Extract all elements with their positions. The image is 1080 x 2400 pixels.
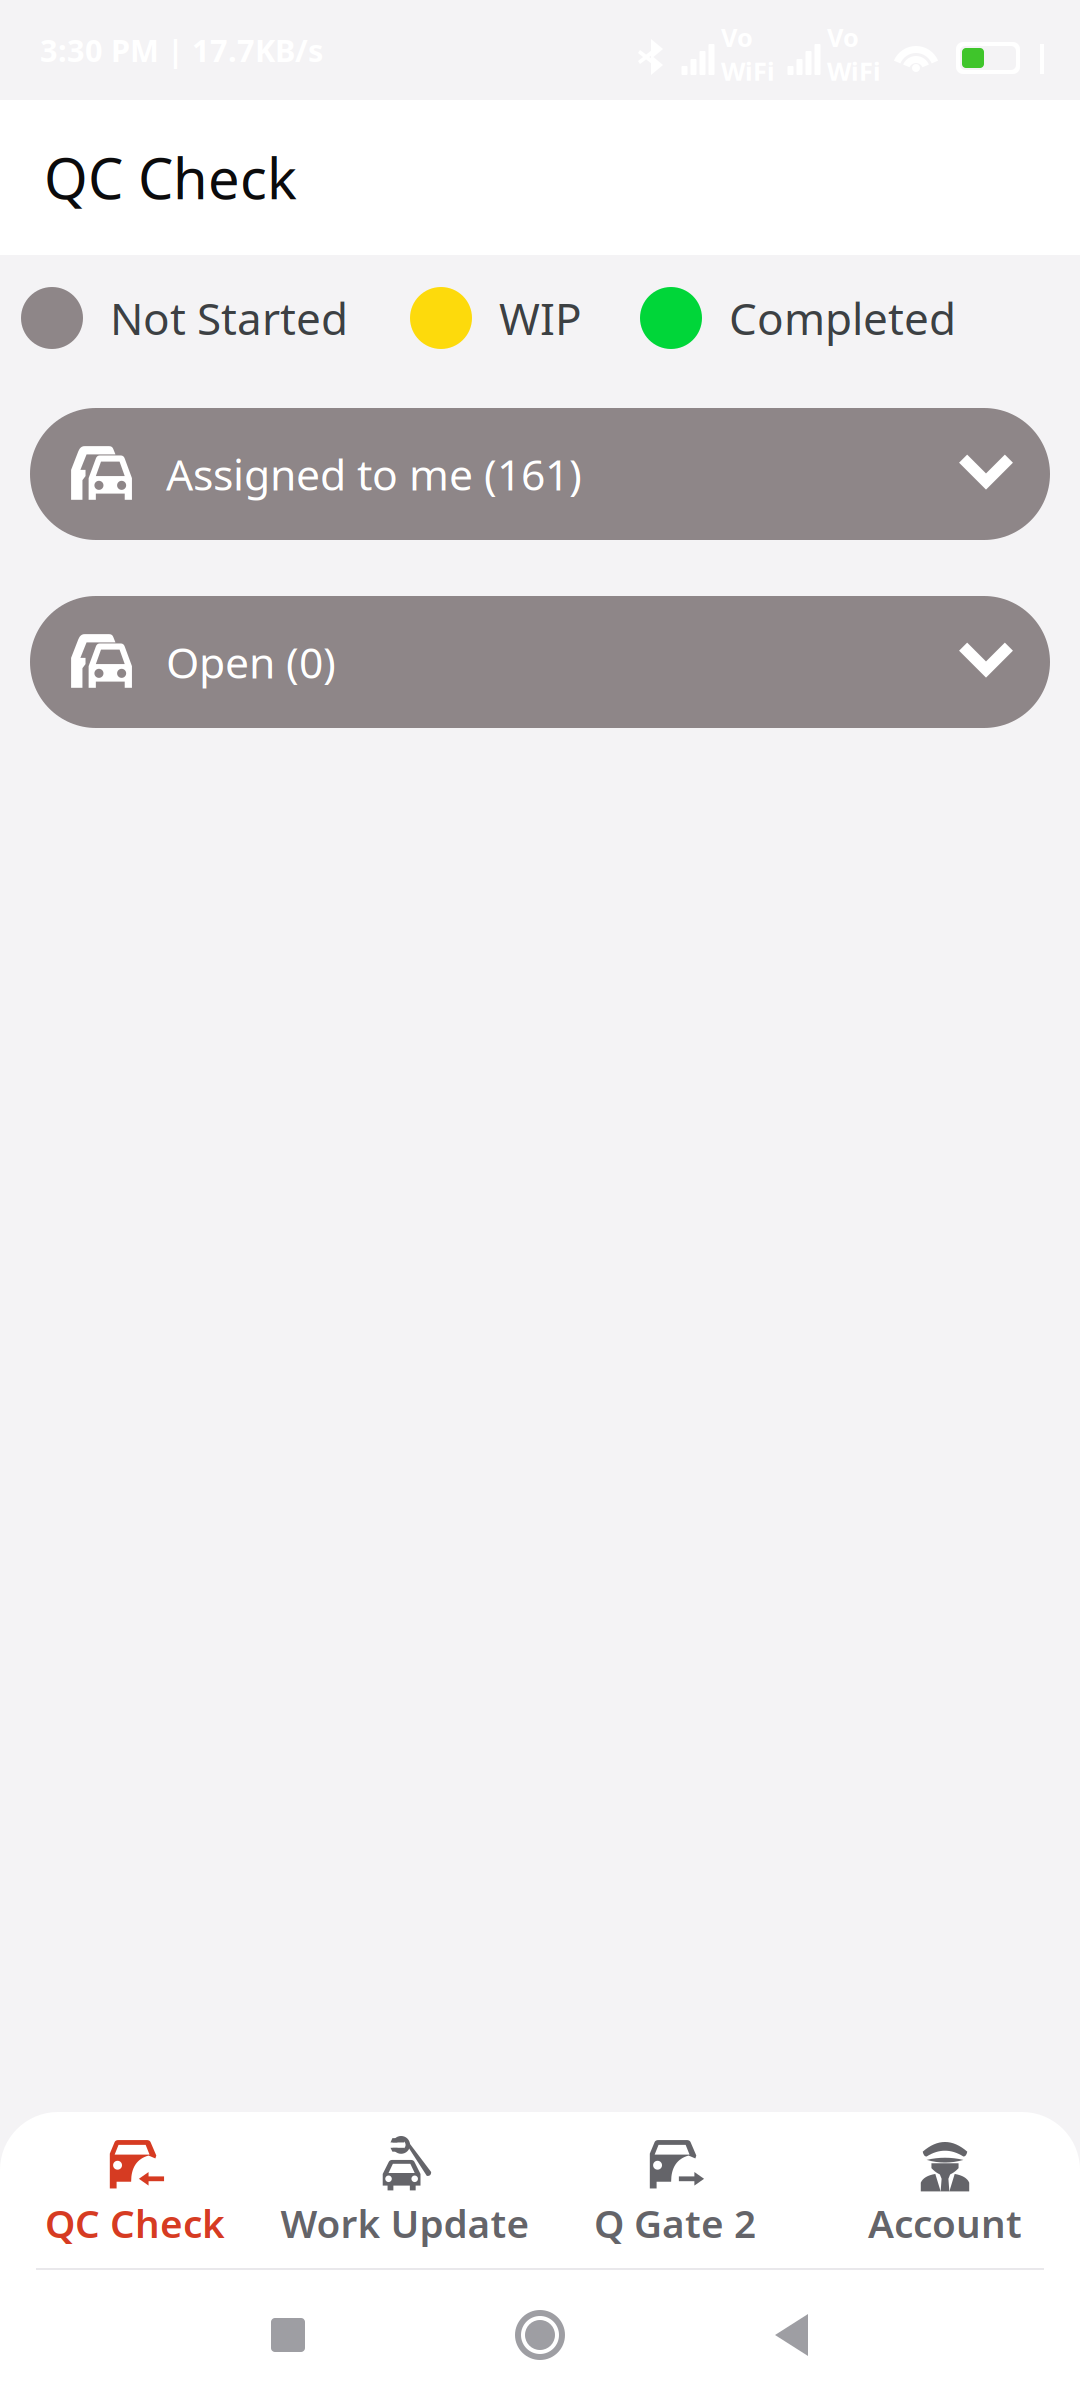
button[interactable]: Work Update xyxy=(270,2112,540,2268)
button[interactable]: Recent apps xyxy=(233,2280,343,2390)
button[interactable]: Home xyxy=(485,2280,595,2390)
button[interactable]: QC Check xyxy=(0,2112,270,2268)
staticText: WIP xyxy=(499,289,582,347)
staticText: Work Update xyxy=(280,2197,529,2249)
button[interactable]: Back xyxy=(737,2280,847,2390)
staticText: Account xyxy=(868,2197,1022,2249)
button[interactable]: Open (0) xyxy=(30,596,1050,728)
staticText: Vo xyxy=(827,20,859,54)
staticText: Not Started xyxy=(110,289,348,347)
staticText: Q Gate 2 xyxy=(594,2197,756,2249)
staticText: Open (0) xyxy=(166,634,336,690)
button[interactable]: Account xyxy=(810,2112,1080,2268)
staticText: WiFi xyxy=(827,54,881,88)
staticText: WiFi xyxy=(721,54,775,88)
staticText: QC Check xyxy=(44,140,297,215)
button[interactable]: Q Gate 2 xyxy=(540,2112,810,2268)
staticText: Completed xyxy=(729,289,956,347)
staticText: QC Check xyxy=(45,2197,225,2249)
staticText: Vo xyxy=(721,20,753,54)
staticText: 3:30 PM | 17.7KB/s xyxy=(40,30,323,70)
button[interactable]: Assigned to me (161) xyxy=(30,408,1050,540)
staticText: Assigned to me (161) xyxy=(166,446,582,502)
